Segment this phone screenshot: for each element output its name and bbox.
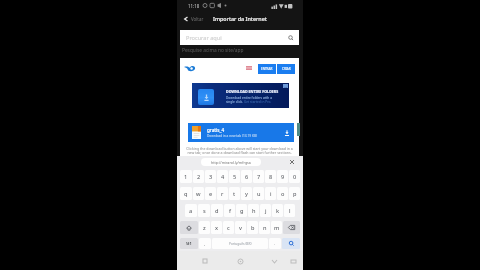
staticText: 5 <box>233 173 237 181</box>
button[interactable]: Backspace <box>283 221 300 234</box>
button[interactable]: Search <box>282 238 300 249</box>
staticText: 8 <box>269 173 273 181</box>
staticText: m <box>274 224 280 232</box>
staticText: b <box>251 224 255 232</box>
button[interactable]: i <box>265 187 276 200</box>
staticText: Clicking the download button above will … <box>186 146 293 155</box>
other: Search <box>288 35 294 41</box>
button[interactable]: p <box>289 187 300 200</box>
button[interactable]: b <box>247 221 258 234</box>
button[interactable]: y <box>241 187 252 200</box>
button[interactable]: ENTRAR <box>258 64 276 74</box>
button[interactable]: 2 <box>193 170 204 183</box>
staticText: Download entire folders with a <box>226 96 272 100</box>
button[interactable]: 4 <box>217 170 228 183</box>
button[interactable]: t <box>229 187 240 200</box>
button[interactable]: Recents <box>199 255 211 267</box>
button[interactable]: Shift <box>180 221 198 234</box>
staticText: h <box>252 207 256 215</box>
button[interactable]: c <box>223 221 234 234</box>
button[interactable]: Português (BR) <box>212 238 268 249</box>
button[interactable]: 0 <box>289 170 300 183</box>
staticText: z <box>203 224 206 232</box>
button[interactable]: Procurar aqui <box>180 30 299 45</box>
button[interactable]: Back <box>268 255 280 267</box>
button[interactable]: !#1 <box>180 238 198 249</box>
staticText: Importar da Internet <box>213 15 267 22</box>
button[interactable]: q <box>180 187 192 200</box>
staticText: g <box>240 207 244 215</box>
staticText: Procurar aqui <box>186 34 222 42</box>
button[interactable]: g <box>236 204 247 217</box>
button[interactable]: l <box>284 204 295 217</box>
staticText: 6 <box>245 173 249 181</box>
staticText: 3 <box>209 173 213 181</box>
button[interactable]: Close <box>289 159 295 165</box>
button[interactable]: e <box>205 187 216 200</box>
staticText: d <box>215 207 219 215</box>
button[interactable]: o <box>277 187 288 200</box>
staticText: j <box>265 207 267 215</box>
button[interactable]: j <box>260 204 271 217</box>
button[interactable]: Hide keyboard <box>287 255 299 267</box>
button[interactable]: x <box>211 221 222 234</box>
button[interactable]: . <box>269 238 281 249</box>
staticText: Download in a new tab (13.19 KB) <box>207 134 257 138</box>
button[interactable]: u <box>253 187 264 200</box>
staticText: single click. <box>226 100 244 104</box>
other: Download <box>284 130 290 136</box>
button[interactable]: 9 <box>277 170 288 183</box>
button[interactable]: 3 <box>205 170 216 183</box>
staticText: o <box>281 190 285 198</box>
staticText: Get started in Pro. <box>244 100 272 104</box>
button[interactable]: DOWNLOAD ENTIRE FOLDERS <box>192 83 289 108</box>
staticText: DOWNLOAD ENTIRE FOLDERS <box>226 89 279 94</box>
button[interactable]: m <box>271 221 282 234</box>
staticText: Português (BR) <box>229 242 252 246</box>
button[interactable]: v <box>235 221 246 234</box>
staticText: . <box>274 241 276 246</box>
staticText: e <box>209 190 213 198</box>
button[interactable]: http://mirand.ly/mfrgsa <box>201 158 261 166</box>
button[interactable]: z <box>199 221 210 234</box>
staticText: t <box>233 190 236 198</box>
button[interactable]: n <box>259 221 270 234</box>
button[interactable]: h <box>248 204 259 217</box>
staticText: k <box>276 207 280 215</box>
staticText: r <box>221 190 224 198</box>
button[interactable]: CRIAR <box>277 64 295 74</box>
staticText: ENTRAR <box>261 67 273 71</box>
button[interactable]: 7 <box>253 170 264 183</box>
button[interactable]: k <box>272 204 283 217</box>
staticText: Pesquise acima no site/app <box>182 47 244 54</box>
staticText: 0 <box>293 173 297 181</box>
staticText: 7 <box>257 173 261 181</box>
button[interactable]: r <box>217 187 228 200</box>
button[interactable]: 1 <box>180 170 192 183</box>
button[interactable]: 6 <box>241 170 252 183</box>
staticText: w <box>196 190 201 198</box>
button[interactable]: Home <box>234 255 246 267</box>
staticText: http://mirand.ly/mfrgsa <box>211 160 251 165</box>
staticText: 1 <box>184 173 188 181</box>
staticText: Ad <box>284 85 287 88</box>
button[interactable]: w <box>193 187 204 200</box>
button[interactable]: d <box>211 204 223 217</box>
staticText: v <box>239 224 242 232</box>
button[interactable]: s <box>198 204 210 217</box>
staticText: 2 <box>197 173 201 181</box>
button[interactable]: 5 <box>229 170 240 183</box>
staticText: f <box>229 207 231 215</box>
staticText: s <box>203 207 206 215</box>
staticText: 9 <box>281 173 285 181</box>
button[interactable]: Voltar <box>183 16 206 22</box>
button[interactable]: 8 <box>265 170 276 183</box>
button[interactable]: a <box>185 204 197 217</box>
staticText: q <box>184 190 188 198</box>
button[interactable]: f <box>224 204 235 217</box>
button[interactable]: gratis_4 <box>188 123 294 142</box>
staticText: n <box>263 224 267 232</box>
staticText: l <box>289 207 291 215</box>
button[interactable]: , <box>199 238 211 249</box>
staticText: a <box>189 207 193 215</box>
